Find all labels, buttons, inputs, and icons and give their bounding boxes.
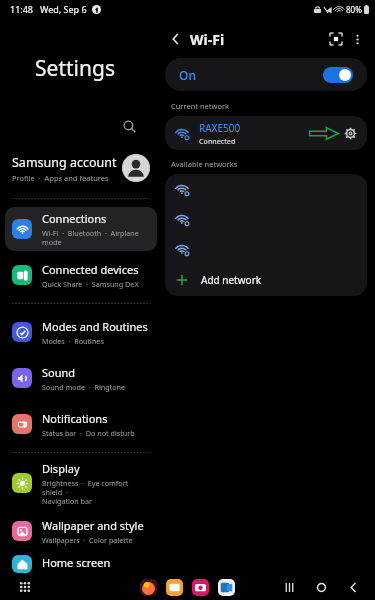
staticText: Modes · Routines: [42, 336, 104, 346]
button[interactable]: [165, 174, 367, 204]
staticText: Add network: [201, 273, 262, 287]
staticText: Samsung account: [12, 154, 117, 171]
button[interactable]: [192, 579, 209, 596]
button[interactable]: Add network: [165, 264, 367, 296]
staticText: Sound: [42, 365, 76, 380]
button[interactable]: Back: [345, 579, 361, 595]
button[interactable]: Search settings: [0, 115, 162, 137]
staticText: Brightness · Eye comfort shield · Naviga…: [42, 478, 150, 506]
staticText: Settings: [0, 54, 150, 83]
staticText: Connections: [42, 211, 107, 226]
staticText: Wallpaper and style: [42, 518, 144, 533]
staticText: Wi-Fi: [190, 30, 225, 49]
button[interactable]: Modes and Routines: [5, 310, 157, 354]
button[interactable]: On: [165, 58, 367, 91]
button[interactable]: Network settings: [341, 124, 359, 142]
staticText: Sound mode · Ringtone: [42, 382, 126, 392]
button[interactable]: More options: [347, 29, 367, 49]
button[interactable]: RAXE500: [165, 116, 367, 150]
button[interactable]: [166, 579, 183, 596]
button[interactable]: Recents: [281, 579, 297, 595]
button[interactable]: [218, 579, 235, 596]
button[interactable]: Display: [5, 459, 157, 507]
staticText: RAXE500: [199, 121, 241, 135]
staticText: Modes and Routines: [42, 319, 148, 334]
staticText: Wi-Fi · Bluetooth · Airplane mode: [42, 228, 150, 247]
staticText: Profile · Apps and features: [12, 173, 109, 183]
staticText: Home screen: [42, 555, 111, 570]
staticText: Quick Share · Samsung DeX: [42, 279, 139, 289]
button[interactable]: All apps: [18, 580, 32, 594]
staticText: Status bar · Do not disturb: [42, 428, 135, 438]
button[interactable]: Connections: [5, 207, 157, 251]
button[interactable]: Notifications: [5, 402, 157, 446]
staticText: Connected devices: [42, 262, 139, 277]
staticText: On: [179, 67, 196, 83]
staticText: Wallpapers · Color palette: [42, 535, 133, 545]
button[interactable]: Home screen: [5, 555, 157, 573]
button[interactable]: Home: [313, 579, 329, 595]
staticText: 80%: [346, 4, 362, 15]
staticText: Display: [42, 461, 80, 476]
button[interactable]: [165, 234, 367, 264]
button[interactable]: Connected devices: [5, 253, 157, 297]
staticText: Current network: [171, 101, 230, 111]
staticText: Available networks: [171, 159, 238, 169]
staticText: Connected: [199, 136, 236, 146]
button[interactable]: [140, 579, 157, 596]
staticText: Wed, Sep 6: [40, 3, 87, 15]
button[interactable]: Sound: [5, 356, 157, 400]
button[interactable]: Scan QR code: [325, 28, 347, 50]
button[interactable]: Back: [165, 28, 187, 50]
staticText: Notifications: [42, 411, 108, 426]
staticText: 11:48: [10, 3, 34, 15]
button[interactable]: [165, 204, 367, 234]
button[interactable]: Samsung account: [0, 147, 162, 189]
button[interactable]: Wallpaper and style: [5, 509, 157, 553]
